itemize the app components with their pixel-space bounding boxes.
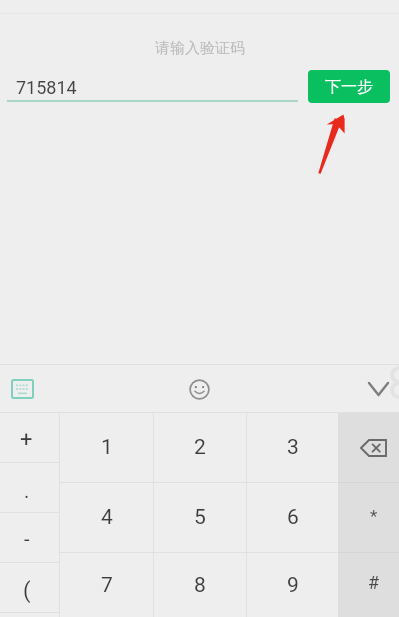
button[interactable]: 9 xyxy=(247,553,338,617)
button[interactable]: 1 xyxy=(60,413,153,482)
button[interactable]: 下一步 xyxy=(308,70,390,103)
button[interactable]: 4 xyxy=(60,483,153,552)
button[interactable]: + xyxy=(0,413,59,462)
button[interactable]: Backspace xyxy=(338,413,399,482)
staticText: + xyxy=(20,427,33,453)
staticText: 715814 xyxy=(16,77,77,98)
staticText: 请输入验证码 xyxy=(155,39,245,58)
button[interactable]: Emoji xyxy=(177,368,221,410)
staticText: - xyxy=(24,527,30,550)
staticText: 9 xyxy=(287,573,299,598)
button[interactable]: ( xyxy=(0,563,59,612)
button[interactable]: 2 xyxy=(154,413,246,482)
staticText: 8 xyxy=(194,573,206,598)
button[interactable]: 5 xyxy=(154,483,246,552)
staticText: 7 xyxy=(101,573,113,598)
button[interactable]: 3 xyxy=(247,413,338,482)
staticText: 4 xyxy=(101,505,113,530)
button[interactable]: Hide keyboard xyxy=(354,368,399,410)
staticText: # xyxy=(368,572,380,593)
staticText: 1 xyxy=(101,435,113,460)
staticText: 2 xyxy=(194,435,206,460)
button[interactable]: 6 xyxy=(247,483,338,552)
button[interactable]: 7 xyxy=(60,553,153,617)
staticText: 3 xyxy=(287,435,299,460)
button[interactable]: - xyxy=(0,513,59,562)
button[interactable]: Verification code field xyxy=(7,68,298,102)
staticText: * xyxy=(370,506,378,526)
button[interactable]: # xyxy=(338,553,399,617)
staticText: ( xyxy=(23,578,31,604)
button[interactable]: * xyxy=(338,483,399,552)
button[interactable]: . xyxy=(0,463,59,512)
button[interactable]: Switch keyboard xyxy=(0,370,44,408)
staticText: 下一步 xyxy=(325,77,373,97)
staticText: 6 xyxy=(287,505,299,530)
button[interactable]: 8 xyxy=(154,553,246,617)
staticText: 5 xyxy=(194,505,206,530)
staticText: . xyxy=(24,479,30,502)
